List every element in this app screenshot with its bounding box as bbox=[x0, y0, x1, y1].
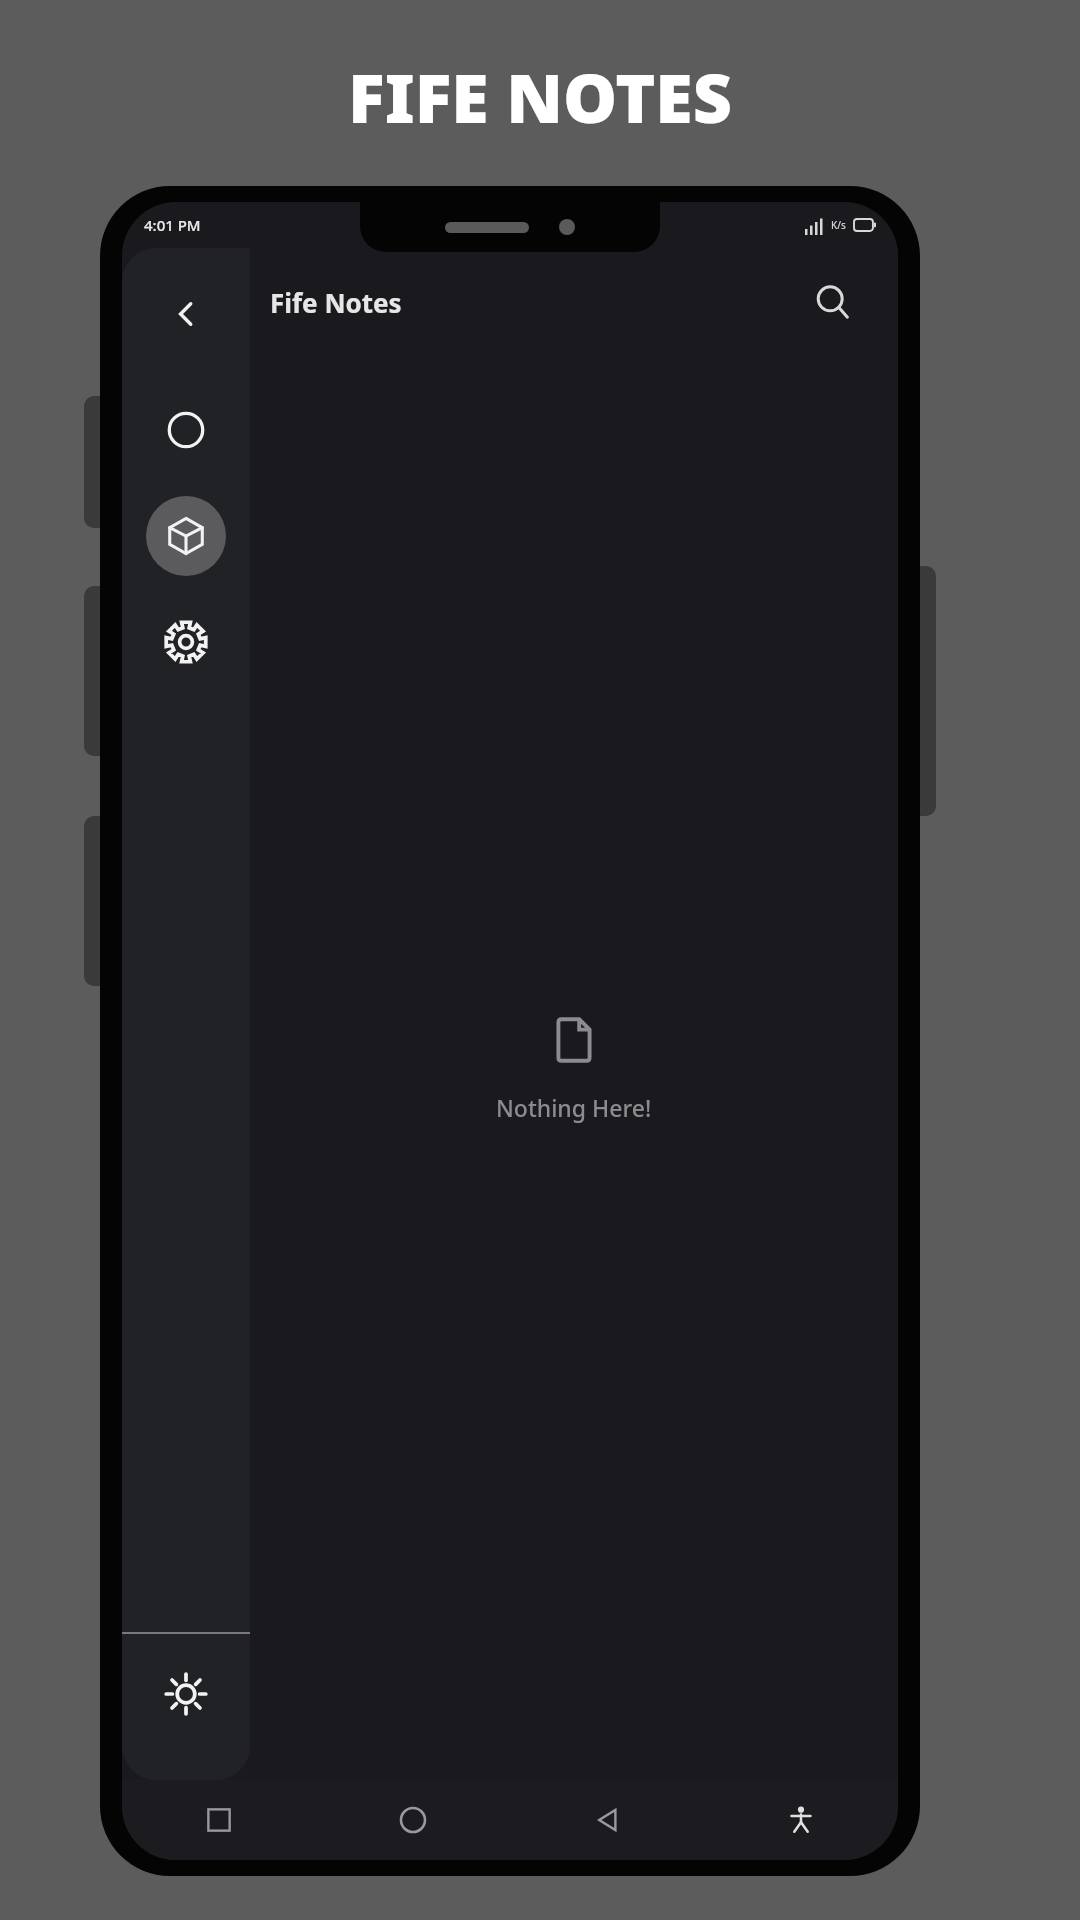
staticText: K/s bbox=[831, 218, 846, 232]
button[interactable]: Brightness bbox=[122, 1634, 250, 1754]
button[interactable]: Back bbox=[154, 282, 218, 346]
button[interactable]: Circle bbox=[146, 390, 226, 470]
button[interactable]: Home bbox=[316, 1780, 510, 1860]
button[interactable]: Search bbox=[802, 271, 864, 333]
staticText: 4:01 PM bbox=[144, 215, 201, 235]
staticText: Nothing Here! bbox=[496, 1092, 652, 1123]
button[interactable]: Recents bbox=[122, 1780, 316, 1860]
button[interactable]: Back bbox=[510, 1780, 704, 1860]
staticText: FIFE NOTES bbox=[348, 50, 732, 143]
button[interactable]: Accessibility bbox=[704, 1780, 898, 1860]
button[interactable]: Box bbox=[146, 496, 226, 576]
button[interactable]: Settings bbox=[146, 602, 226, 682]
staticText: Fife Notes bbox=[270, 285, 402, 320]
